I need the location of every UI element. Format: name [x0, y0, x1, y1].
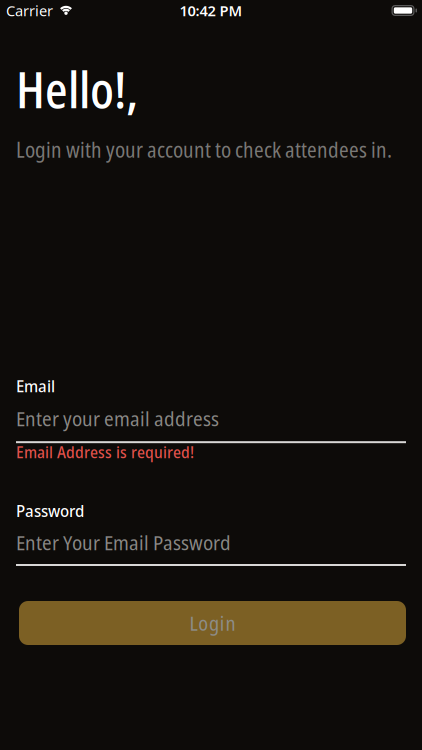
staticText: Login — [189, 609, 236, 637]
staticText: Enter your email address — [16, 405, 219, 432]
staticText: Password — [16, 500, 84, 522]
staticText: Carrier — [6, 1, 53, 20]
staticText: Enter Your Email Password — [16, 529, 231, 556]
staticText: Login with your account to check attende… — [16, 135, 392, 164]
button[interactable]: Login — [16, 601, 406, 645]
button[interactable]: Enter your email address — [16, 397, 406, 443]
staticText: 10:42 PM — [179, 1, 242, 20]
staticText: Email Address is required! — [16, 441, 194, 463]
button[interactable]: Enter Your Email Password — [16, 522, 406, 566]
staticText: Hello!, — [16, 54, 138, 123]
staticText: Email — [16, 375, 55, 397]
